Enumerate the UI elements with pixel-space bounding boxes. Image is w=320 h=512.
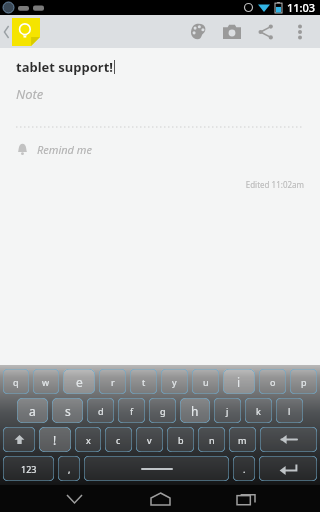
button[interactable]: c bbox=[105, 427, 132, 452]
button[interactable]: Space bbox=[84, 456, 229, 481]
button[interactable]: Hide keyboard bbox=[31, 485, 117, 512]
button[interactable]: q bbox=[3, 369, 29, 394]
staticText: e bbox=[76, 374, 83, 390]
button[interactable]: 123 bbox=[3, 456, 54, 481]
staticText: tablet support! bbox=[16, 58, 113, 76]
button[interactable]: Navigate up bbox=[0, 15, 40, 48]
staticText: i bbox=[237, 374, 241, 390]
staticText: w bbox=[42, 376, 50, 388]
staticText: g bbox=[160, 405, 166, 417]
staticText: x bbox=[86, 434, 91, 446]
button[interactable]: Delete bbox=[260, 427, 317, 452]
staticText: n bbox=[209, 434, 215, 446]
button[interactable]: Recent apps bbox=[203, 485, 289, 512]
button[interactable]: ! bbox=[39, 427, 71, 452]
staticText: y bbox=[172, 376, 177, 388]
staticText: j bbox=[226, 405, 229, 417]
staticText: v bbox=[147, 434, 152, 446]
button[interactable]: . bbox=[233, 456, 255, 481]
staticText: m bbox=[238, 434, 247, 446]
button[interactable]: , bbox=[58, 456, 80, 481]
button[interactable]: a bbox=[17, 398, 48, 423]
staticText: c bbox=[116, 434, 121, 446]
button[interactable]: p bbox=[290, 369, 317, 394]
button[interactable]: h bbox=[180, 398, 210, 423]
button[interactable]: n bbox=[198, 427, 225, 452]
staticText: k bbox=[256, 405, 261, 417]
button[interactable]: l bbox=[276, 398, 303, 423]
button[interactable]: Share bbox=[249, 15, 283, 48]
staticText: d bbox=[98, 405, 104, 417]
button[interactable]: w bbox=[33, 369, 59, 394]
button[interactable]: e bbox=[63, 369, 95, 394]
button[interactable]: r bbox=[99, 369, 126, 394]
button[interactable]: b bbox=[167, 427, 194, 452]
button[interactable]: Home bbox=[117, 485, 203, 512]
staticText: o bbox=[270, 376, 276, 388]
staticText: h bbox=[191, 403, 199, 419]
button[interactable]: s bbox=[52, 398, 83, 423]
staticText: Remind me bbox=[37, 142, 92, 157]
button[interactable]: x bbox=[75, 427, 101, 452]
button[interactable]: o bbox=[259, 369, 286, 394]
button[interactable]: j bbox=[214, 398, 241, 423]
button[interactable]: t bbox=[130, 369, 157, 394]
button[interactable]: More options bbox=[283, 15, 317, 48]
button[interactable]: Shift bbox=[3, 427, 35, 452]
staticText: r bbox=[111, 376, 115, 388]
staticText: 123 bbox=[21, 463, 37, 475]
staticText: q bbox=[13, 376, 19, 388]
button[interactable]: u bbox=[192, 369, 219, 394]
staticText: p bbox=[301, 376, 307, 388]
button[interactable]: y bbox=[161, 369, 188, 394]
button[interactable]: g bbox=[149, 398, 176, 423]
staticText: l bbox=[288, 405, 291, 417]
button[interactable]: Remind me bbox=[0, 138, 320, 161]
staticText: Edited 11:02am bbox=[0, 179, 304, 190]
staticText: f bbox=[130, 405, 134, 417]
staticText: ! bbox=[53, 432, 57, 448]
button[interactable]: d bbox=[87, 398, 114, 423]
button[interactable]: Note bbox=[16, 85, 44, 103]
button[interactable]: Change color bbox=[181, 15, 215, 48]
staticText: . bbox=[243, 463, 246, 475]
staticText: a bbox=[29, 403, 36, 419]
staticText: u bbox=[203, 376, 209, 388]
button[interactable]: m bbox=[229, 427, 256, 452]
button[interactable]: k bbox=[245, 398, 272, 423]
staticText: s bbox=[65, 403, 71, 419]
staticText: b bbox=[178, 434, 184, 446]
button[interactable]: Enter bbox=[259, 456, 317, 481]
staticText: , bbox=[68, 463, 71, 475]
staticText: 11:03 bbox=[287, 0, 316, 15]
button[interactable]: Add photo bbox=[215, 15, 249, 48]
button[interactable]: i bbox=[223, 369, 255, 394]
button[interactable]: v bbox=[136, 427, 163, 452]
staticText: t bbox=[142, 376, 146, 388]
button[interactable]: f bbox=[118, 398, 145, 423]
